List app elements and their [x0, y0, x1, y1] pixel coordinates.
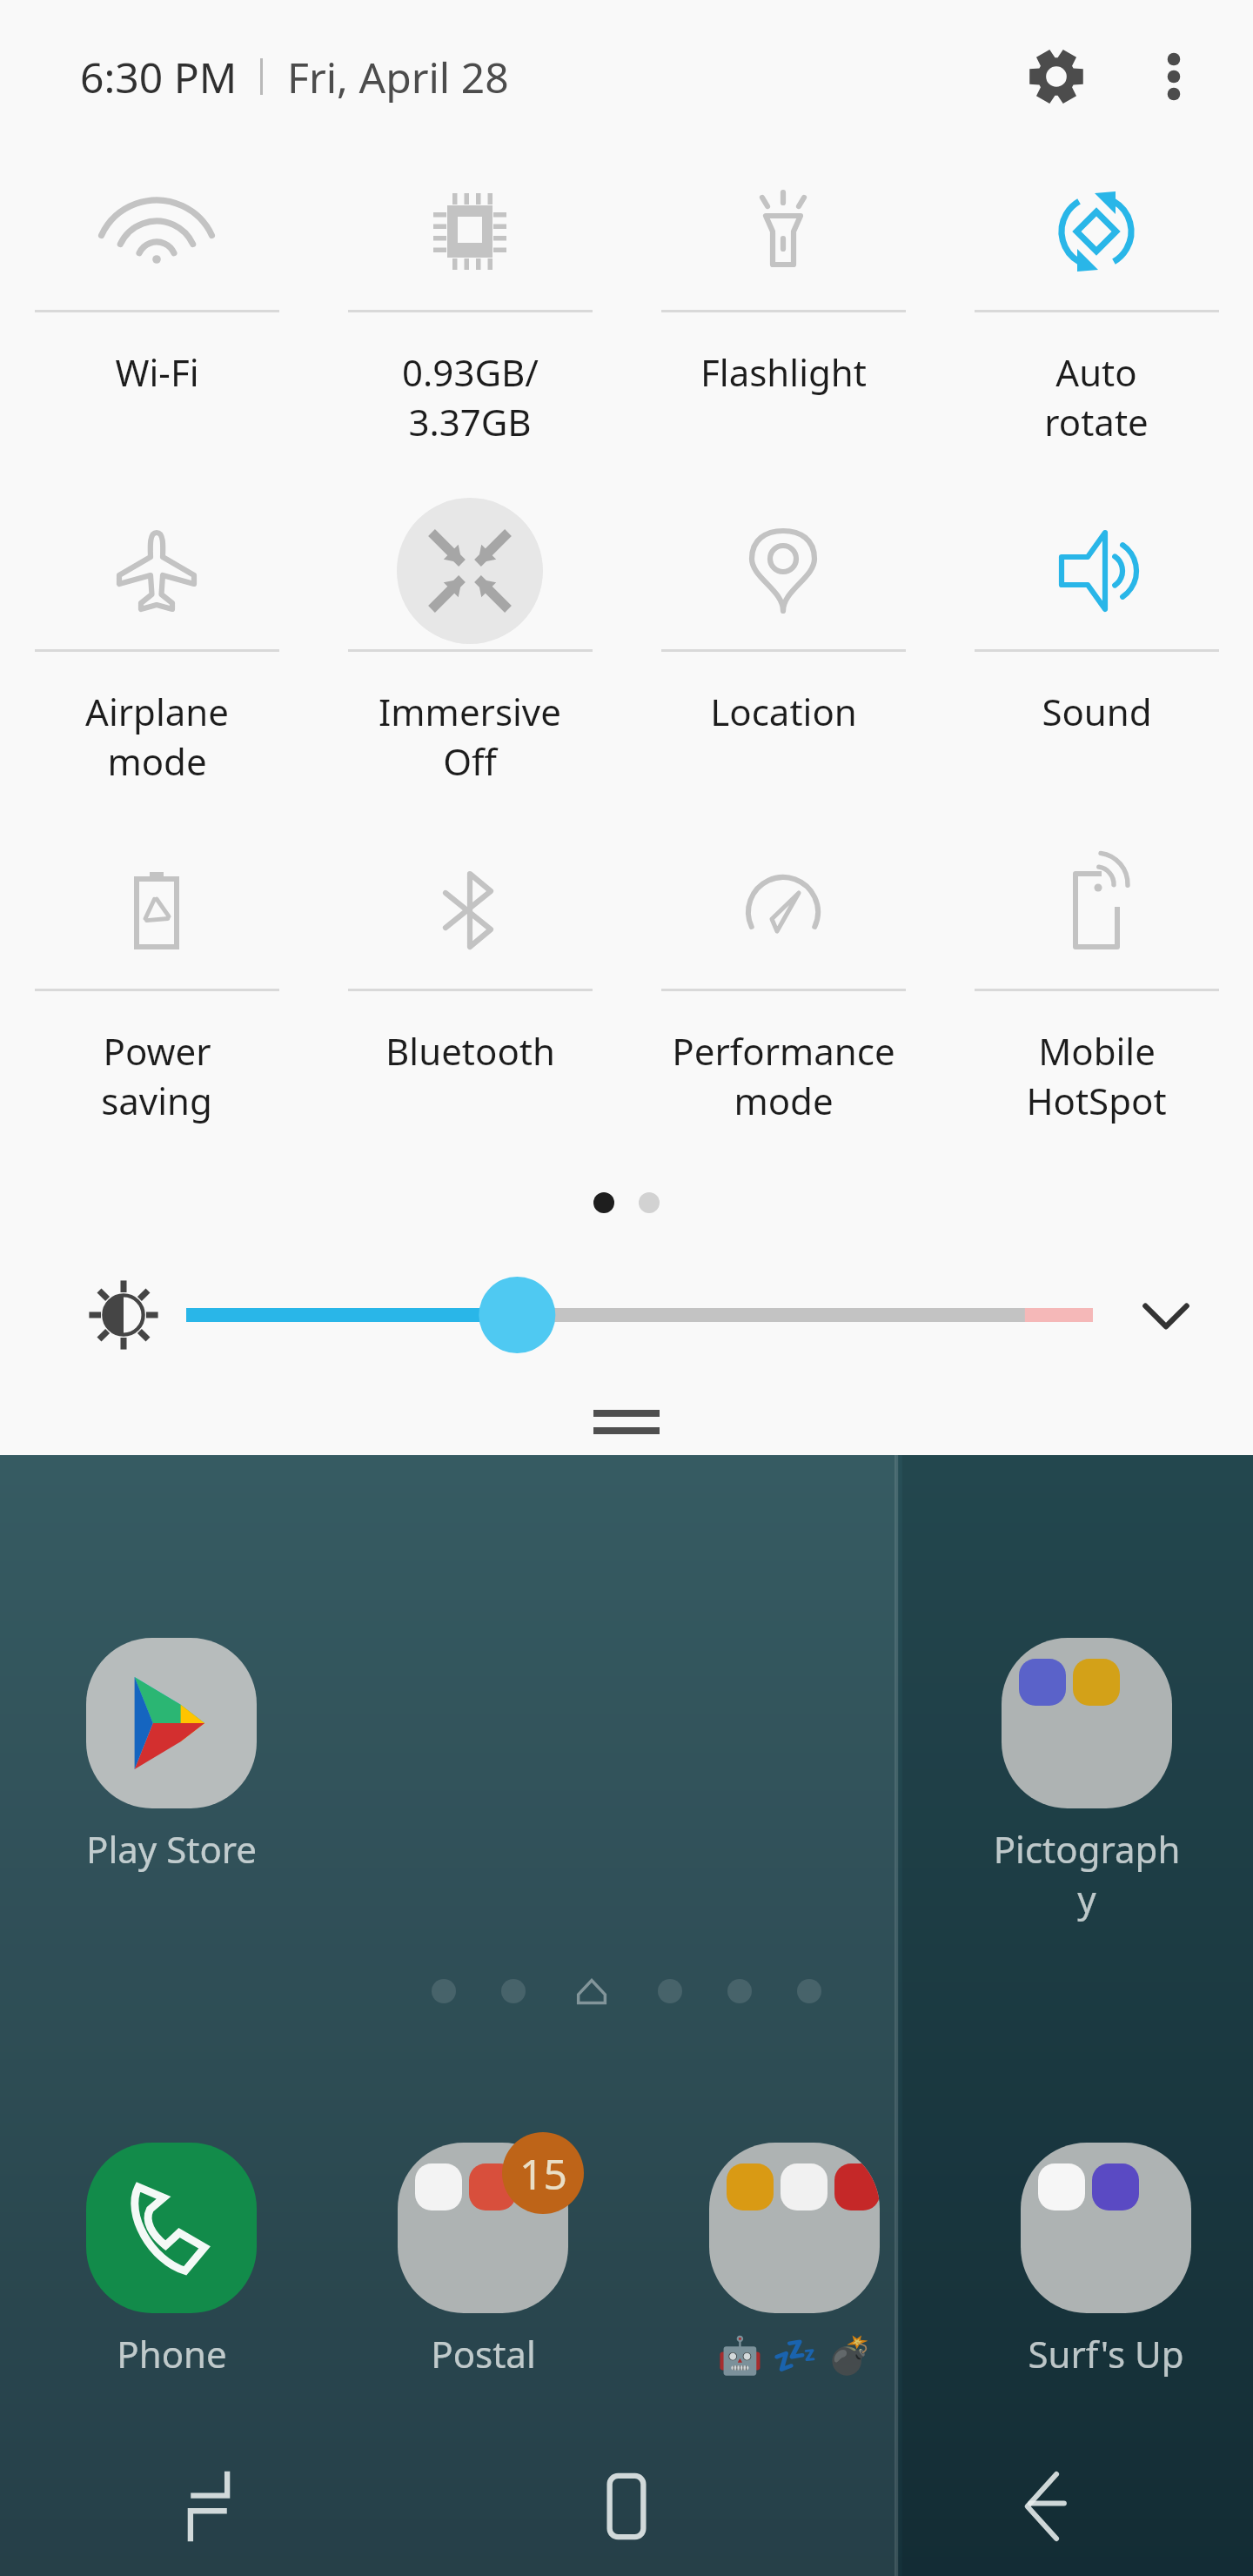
button[interactable]: Immersive [313, 493, 626, 832]
staticText: 🤖 💤 💣 [717, 2329, 873, 2378]
staticText: Phone [117, 2329, 227, 2378]
staticText: Postal [431, 2329, 536, 2378]
button[interactable]: Auto [940, 153, 1253, 493]
staticText: Fri, April 28 [287, 49, 509, 105]
button[interactable]: Settings [995, 16, 1117, 138]
button[interactable]: Bluetooth [313, 832, 626, 1171]
button[interactable]: 0.93GB/ [313, 153, 626, 493]
staticText: saving [101, 1076, 212, 1125]
staticText: Surf's Up [1028, 2329, 1184, 2378]
button[interactable]: Phone [77, 2141, 266, 2378]
staticText: Performance [672, 1026, 895, 1076]
staticText: Play Store [86, 1824, 257, 1874]
staticText: Immersive [379, 687, 561, 736]
staticText: Auto [1055, 347, 1137, 397]
staticText: Power [103, 1026, 211, 1076]
button[interactable]: 15 [388, 2141, 578, 2378]
staticText: Bluetooth [385, 1026, 555, 1076]
button[interactable]: Mobile [940, 832, 1253, 1171]
staticText: rotate [1044, 397, 1149, 446]
staticText: Pictography [992, 1824, 1182, 1923]
staticText: mode [734, 1076, 834, 1125]
button[interactable]: Flashlight [626, 153, 940, 493]
staticText: 15 [519, 2145, 567, 2202]
staticText: Location [710, 687, 857, 736]
button[interactable]: Wi-Fi [0, 153, 313, 493]
staticText: Off [443, 736, 497, 786]
staticText: HotSpot [1026, 1076, 1167, 1125]
button[interactable]: Pictography [992, 1636, 1182, 1923]
button[interactable]: Surf's Up [1011, 2141, 1201, 2378]
button[interactable]: Location [626, 493, 940, 832]
staticText: Mobile [1038, 1026, 1156, 1076]
button[interactable]: Brightness [75, 1266, 172, 1364]
staticText: Flashlight [700, 347, 867, 397]
button[interactable]: More options [1117, 20, 1230, 133]
button[interactable]: 🤖 💤 💣 [700, 2141, 889, 2378]
staticText: 6:30 PM [80, 49, 238, 105]
button[interactable]: Play Store [77, 1636, 266, 1874]
staticText: Wi-Fi [115, 347, 199, 397]
staticText: mode [107, 736, 207, 786]
button[interactable]: Home [418, 2437, 835, 2576]
button[interactable] [186, 1266, 1093, 1364]
staticText: 3.37GB [408, 397, 532, 446]
button[interactable]: Sound [940, 493, 1253, 832]
staticText: Sound [1042, 687, 1152, 736]
button[interactable]: Power [0, 832, 313, 1171]
button[interactable]: Expand [1112, 1261, 1220, 1369]
button[interactable]: Recent apps [0, 2437, 418, 2576]
button[interactable]: Back [835, 2437, 1253, 2576]
staticText: Airplane [85, 687, 229, 736]
button[interactable]: Airplane [0, 493, 313, 832]
staticText: 0.93GB/ [402, 347, 539, 397]
button[interactable]: Performance [626, 832, 940, 1171]
